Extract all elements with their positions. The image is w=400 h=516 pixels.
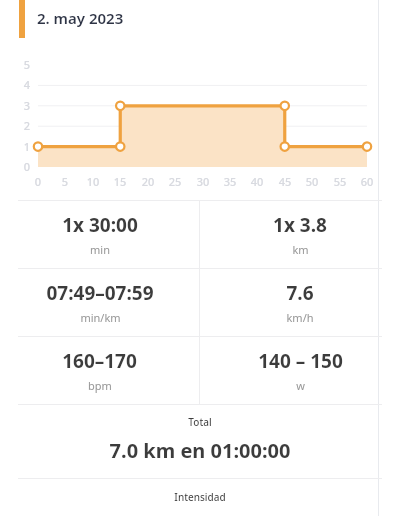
staticText: 140 – 150: [258, 348, 343, 374]
staticText: 2. may 2023: [37, 8, 124, 28]
staticText: 15: [106, 174, 134, 189]
staticText: 4: [12, 77, 30, 92]
staticText: 1x 30:00: [62, 212, 138, 238]
button[interactable]: Total: [0, 405, 400, 478]
staticText: 10: [79, 174, 107, 189]
staticText: km: [292, 242, 309, 257]
staticText: min: [90, 242, 110, 257]
staticText: 160–170: [62, 348, 137, 374]
staticText: 1x 3.8: [273, 212, 327, 238]
staticText: Intensidad: [0, 490, 400, 504]
button[interactable]: 140 – 150: [200, 337, 400, 404]
staticText: 50: [298, 174, 326, 189]
button[interactable]: 07:49–07:59: [0, 269, 199, 336]
button[interactable]: 160–170: [0, 337, 199, 404]
button[interactable]: 7.6: [200, 269, 400, 336]
staticText: 7.0 km en 01:00:00: [0, 437, 400, 464]
button[interactable]: 2. may 2023: [0, 0, 400, 46]
staticText: 07:49–07:59: [46, 280, 154, 306]
button[interactable]: 1x 30:00: [0, 201, 199, 268]
staticText: 0: [12, 159, 30, 174]
staticText: w: [296, 378, 305, 393]
staticText: 5: [51, 174, 79, 189]
staticText: 2: [12, 118, 30, 133]
staticText: 45: [271, 174, 299, 189]
staticText: 0: [24, 174, 52, 189]
staticText: 60: [353, 174, 381, 189]
button[interactable]: Intensidad: [0, 479, 400, 516]
staticText: 40: [243, 174, 271, 189]
staticText: 25: [161, 174, 189, 189]
staticText: 1: [12, 139, 30, 154]
staticText: 30: [189, 174, 217, 189]
staticText: Total: [0, 415, 400, 429]
staticText: min/km: [80, 310, 121, 325]
staticText: 5: [12, 57, 30, 72]
staticText: 20: [134, 174, 162, 189]
staticText: bpm: [88, 378, 112, 393]
staticText: 55: [326, 174, 354, 189]
staticText: 3: [12, 98, 30, 113]
staticText: km/h: [286, 310, 314, 325]
button[interactable]: 1x 3.8: [200, 201, 400, 268]
staticText: 7.6: [286, 280, 314, 306]
staticText: 35: [216, 174, 244, 189]
